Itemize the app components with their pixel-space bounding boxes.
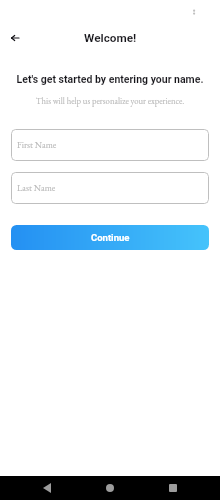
button[interactable]: First Name [11,129,209,161]
button[interactable]: Recent apps [160,476,186,500]
button[interactable]: Last Name [11,172,209,204]
staticText: First Name [17,139,57,151]
staticText: This will help us personalize your exper… [0,95,220,106]
button[interactable]: Back [34,476,60,500]
button[interactable]: Home [97,476,123,500]
staticText: Let's get started by entering your name. [0,73,220,85]
staticText: Welcome! [84,31,137,45]
staticText: Continue [91,232,130,243]
button[interactable]: Back [4,27,26,49]
button[interactable]: Continue [11,225,209,250]
staticText: Last Name [17,182,56,194]
